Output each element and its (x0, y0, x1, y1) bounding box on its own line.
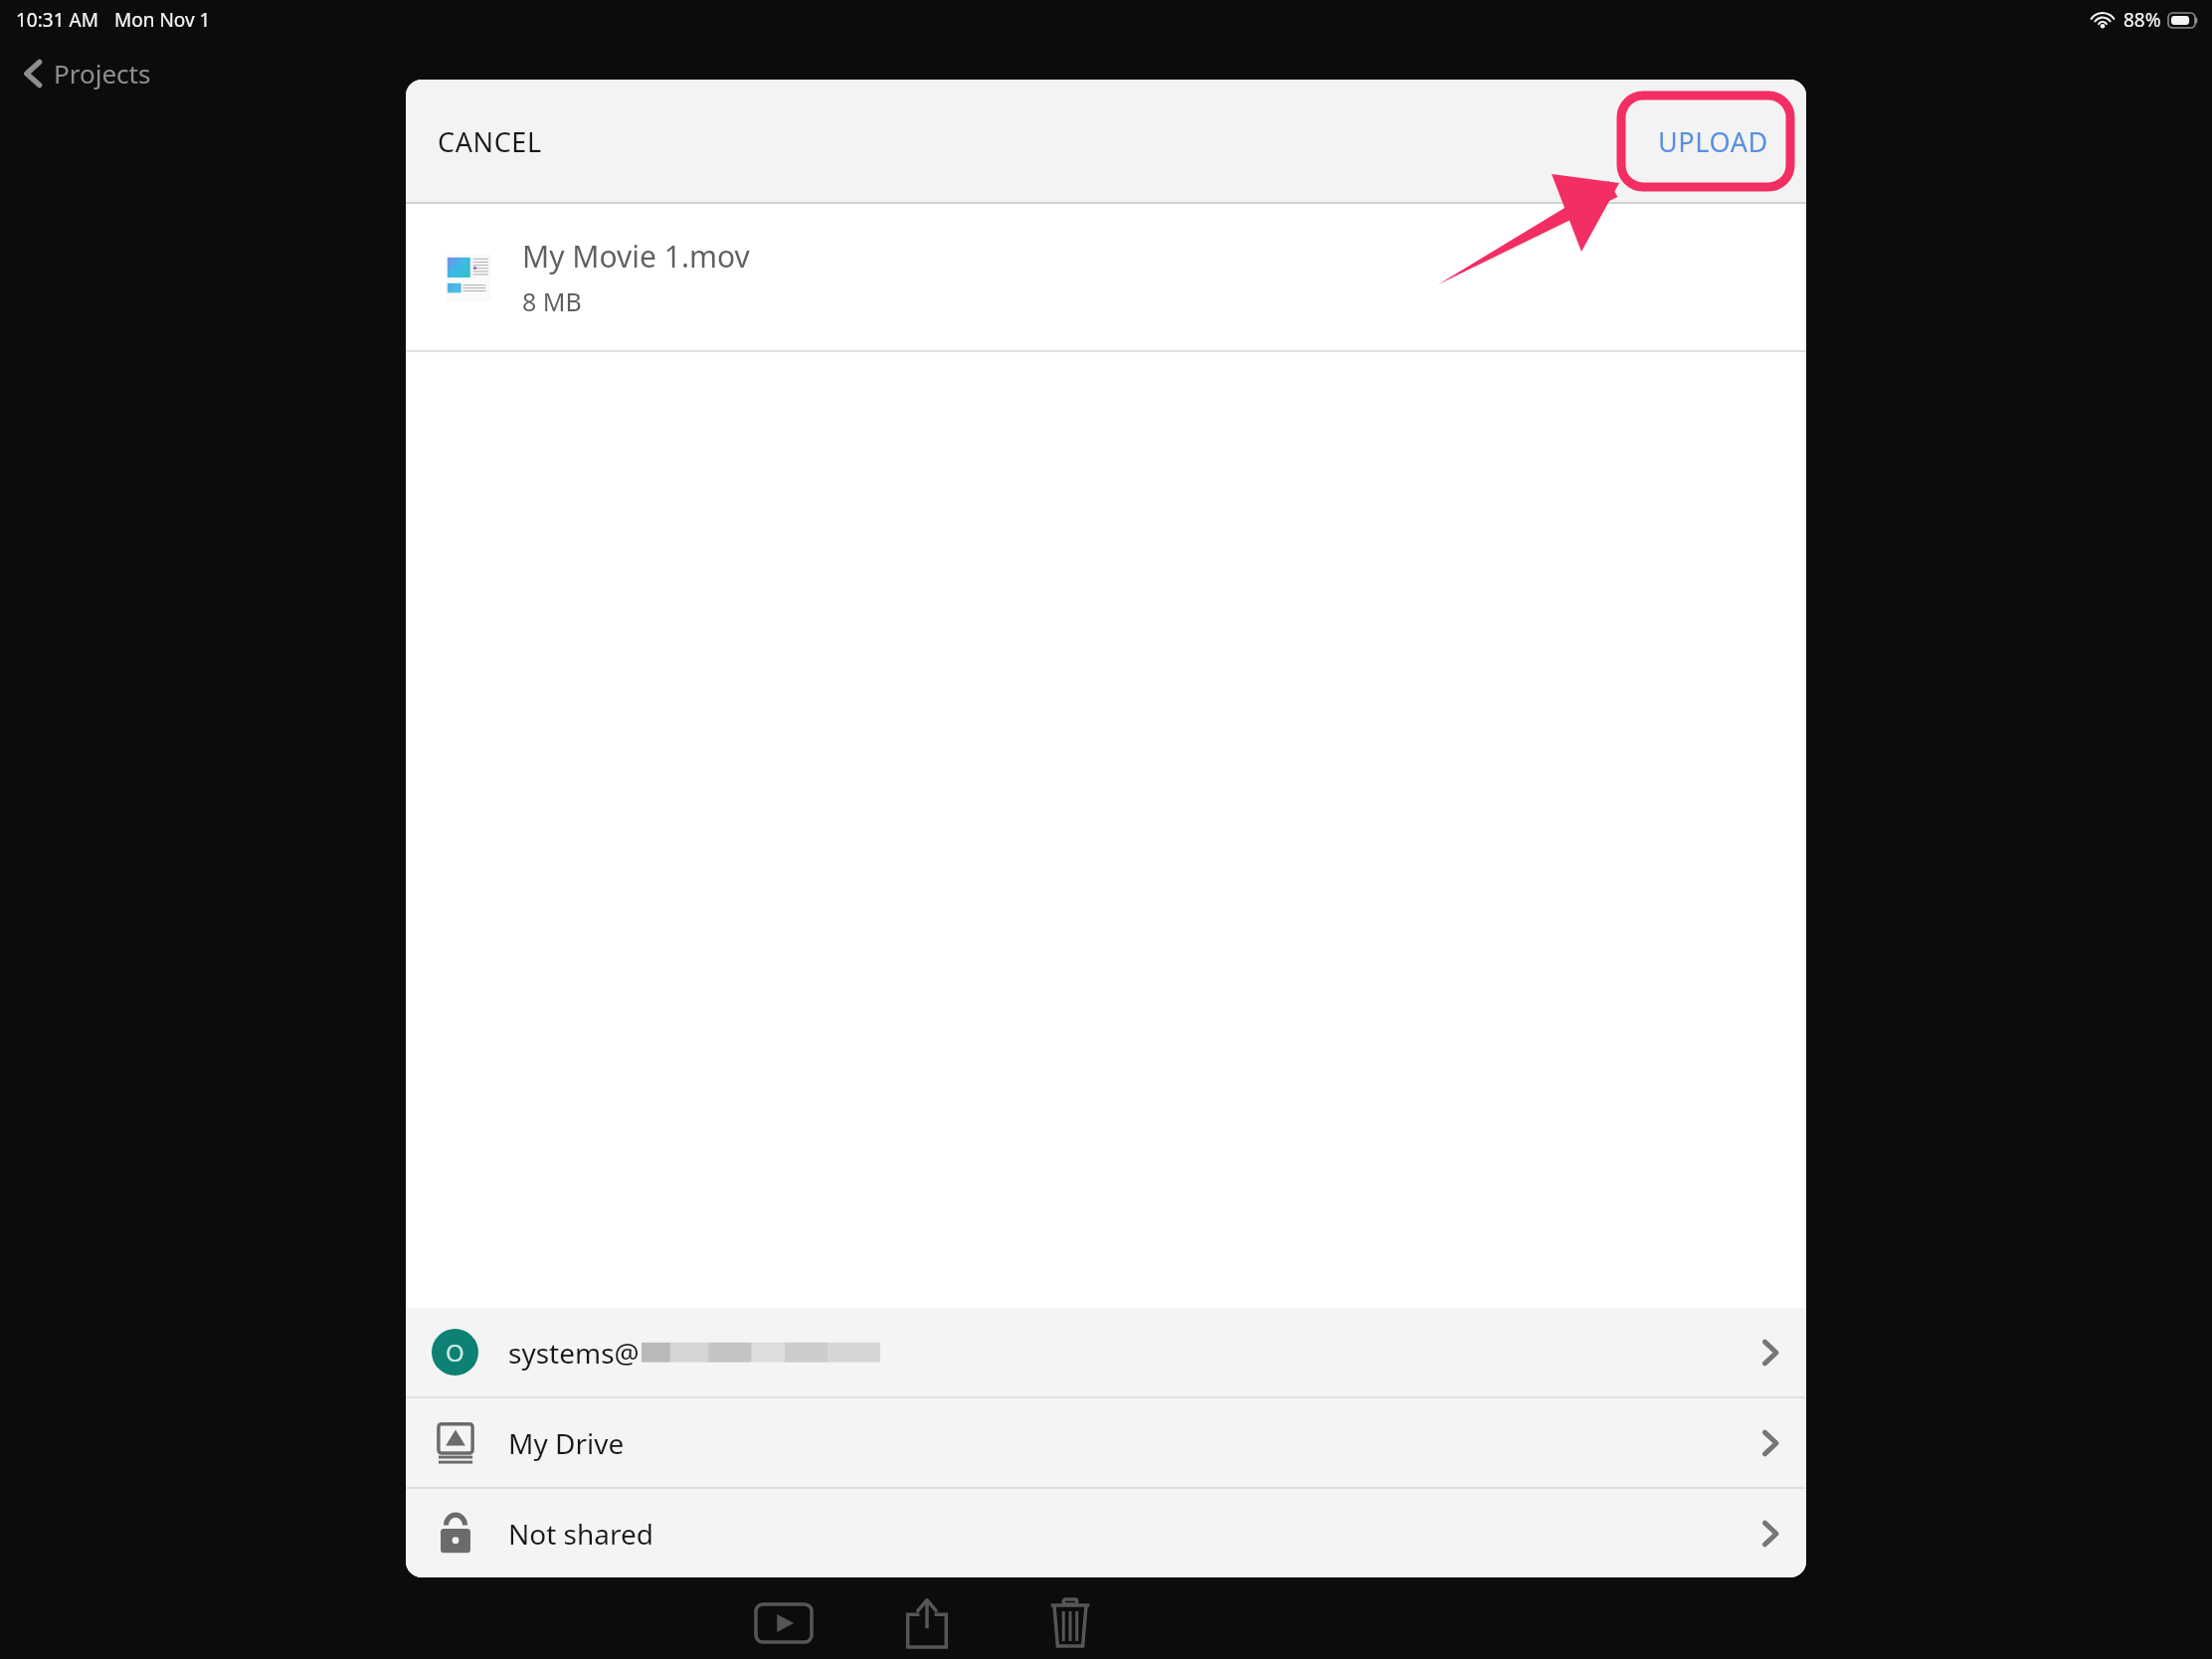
button[interactable]: Projects (14, 50, 159, 96)
staticText: Not shared (508, 1515, 654, 1553)
button[interactable]: My Drive (406, 1398, 1806, 1487)
staticText: CANCEL (438, 123, 542, 160)
staticText: 10:31 AM (16, 7, 98, 33)
button[interactable]: Play (736, 1590, 831, 1656)
staticText: Projects (54, 56, 151, 91)
staticText: UPLOAD (1658, 123, 1768, 160)
button[interactable]: My Movie 1.mov (406, 204, 1806, 350)
button[interactable]: O (406, 1308, 1806, 1396)
staticText: 88% (2123, 7, 2161, 33)
button[interactable]: Share (879, 1590, 975, 1656)
staticText: Mon Nov 1 (114, 7, 211, 33)
button[interactable]: CANCEL (426, 113, 554, 170)
button[interactable]: Delete (1022, 1590, 1118, 1656)
button[interactable]: UPLOAD (1642, 113, 1784, 170)
staticText: My Drive (508, 1424, 625, 1462)
staticText: My Movie 1.mov (522, 236, 750, 276)
button[interactable]: Not shared (406, 1489, 1806, 1577)
staticText: O (446, 1336, 464, 1369)
staticText: 8 MB (522, 284, 582, 318)
staticText: systems@ (508, 1334, 640, 1372)
